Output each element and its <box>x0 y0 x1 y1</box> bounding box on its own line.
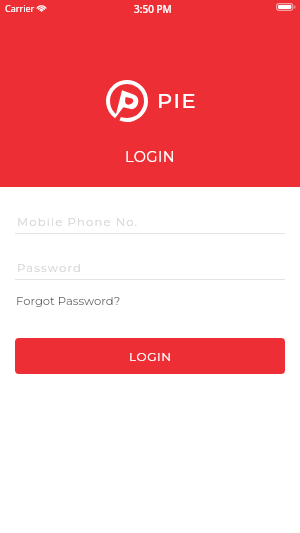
staticText: LOGIN <box>125 148 175 166</box>
staticText: LOGIN <box>129 349 172 364</box>
staticText: Carrier <box>5 2 35 14</box>
staticText: Forgot Password? <box>16 294 121 308</box>
staticText: PIE <box>157 88 198 114</box>
button[interactable]: LOGIN <box>15 338 285 374</box>
staticText: Password <box>17 261 83 275</box>
staticText: 3:50 PM <box>134 2 172 16</box>
staticText: Mobile Phone No. <box>17 215 139 229</box>
button[interactable]: Forgot Password? <box>16 294 121 308</box>
